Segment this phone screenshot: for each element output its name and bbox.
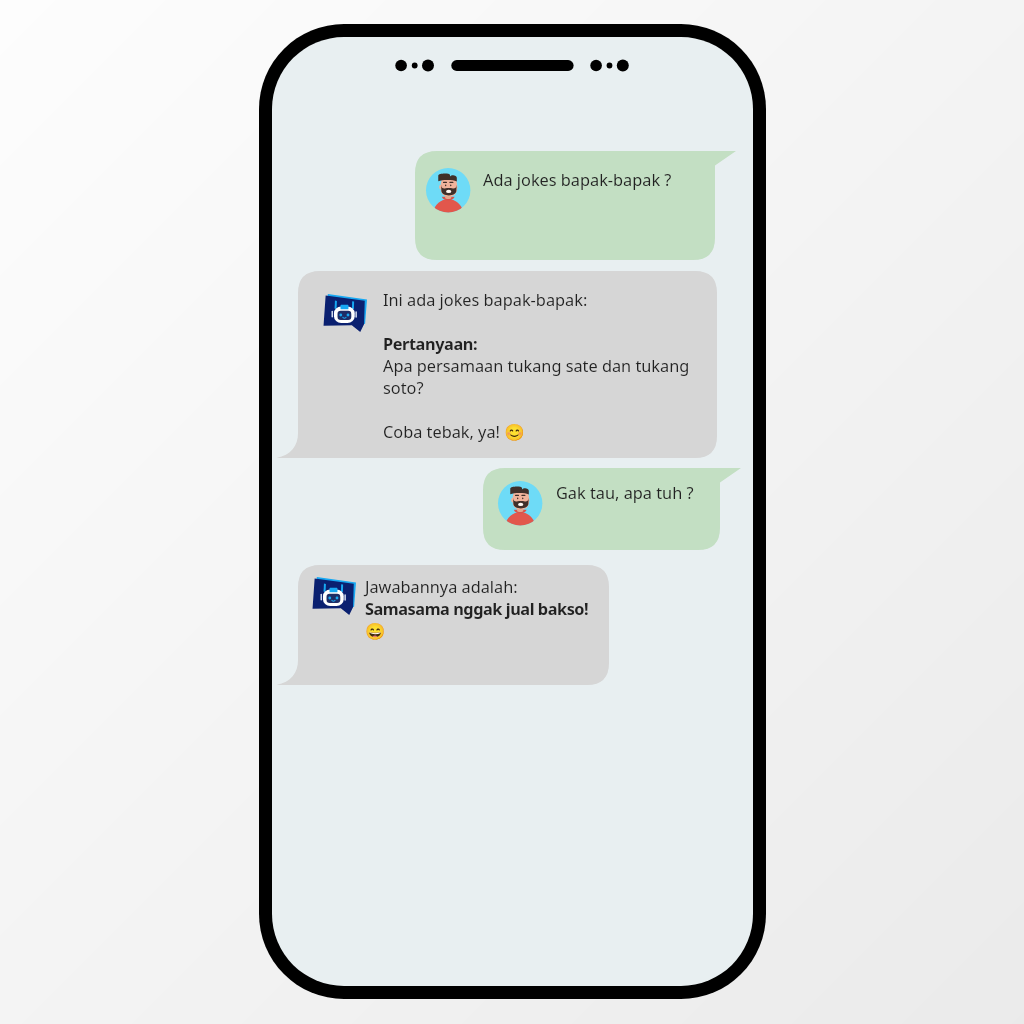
other: User avatar <box>426 168 470 212</box>
button[interactable] <box>415 151 715 260</box>
staticText: Ini ada jokes bapak-bapak: Pertanyaan: A… <box>383 289 693 443</box>
other: Bot avatar <box>312 577 356 616</box>
staticText: Ada jokes bapak-bapak ? <box>483 169 672 191</box>
button[interactable] <box>298 565 609 685</box>
other: User avatar <box>498 481 542 525</box>
button[interactable] <box>298 271 717 458</box>
other: Bot avatar <box>323 294 367 333</box>
staticText: Gak tau, apa tuh ? <box>556 482 694 504</box>
staticText: Jawabannya adalah: Samasama nggak jual b… <box>365 576 615 641</box>
button[interactable] <box>483 468 720 550</box>
